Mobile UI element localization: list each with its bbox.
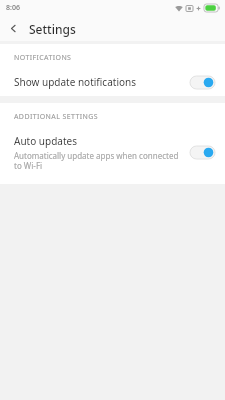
button[interactable]: Show update notifications — [0, 68, 225, 96]
staticText: Settings — [29, 21, 76, 37]
button[interactable]: Toggle — [190, 146, 215, 159]
button[interactable]: Toggle — [190, 76, 215, 89]
button[interactable]: Back — [0, 16, 26, 41]
button[interactable]: Auto updates — [0, 127, 225, 178]
staticText: NOTIFICATIONS — [14, 53, 72, 63]
staticText: 8:06 — [6, 3, 20, 13]
staticText: ADDITIONAL SETTINGS — [14, 112, 98, 122]
staticText: Automatically update apps when connected… — [14, 150, 182, 171]
staticText: Show update notifications — [14, 75, 136, 89]
staticText: Auto updates — [14, 134, 77, 148]
